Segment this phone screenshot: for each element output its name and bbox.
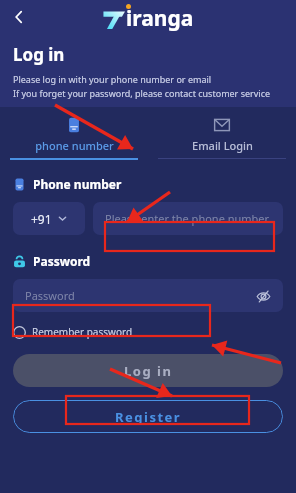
staticText: Log in — [124, 362, 173, 380]
staticText: +91 — [31, 211, 52, 227]
staticText: phone number — [35, 138, 114, 153]
button[interactable]: Please enter the phone number — [93, 202, 283, 235]
button[interactable]: +91 — [13, 202, 85, 235]
button[interactable]: phone number — [0, 115, 148, 160]
button[interactable]: Password — [13, 279, 283, 312]
staticText: Log in — [13, 43, 65, 66]
button[interactable]: Register — [13, 400, 283, 433]
staticText: Phone number — [33, 176, 122, 192]
staticText: Password — [33, 253, 91, 269]
staticText: Please log in with your phone number or … — [13, 73, 212, 85]
staticText: Email Login — [192, 138, 253, 153]
staticText: iranga — [126, 4, 194, 33]
button[interactable]: Back — [4, 2, 34, 32]
staticText: Remember password — [32, 325, 133, 339]
staticText: If you forget your password, please cont… — [13, 87, 271, 99]
button[interactable]: Log in — [13, 354, 283, 387]
button[interactable]: Email Login — [148, 115, 296, 159]
staticText: Please enter the phone number — [105, 211, 270, 226]
button[interactable]: Show password — [251, 284, 275, 308]
button[interactable]: Remember password — [13, 325, 133, 339]
staticText: Register — [115, 408, 182, 426]
staticText: Password — [25, 288, 75, 303]
